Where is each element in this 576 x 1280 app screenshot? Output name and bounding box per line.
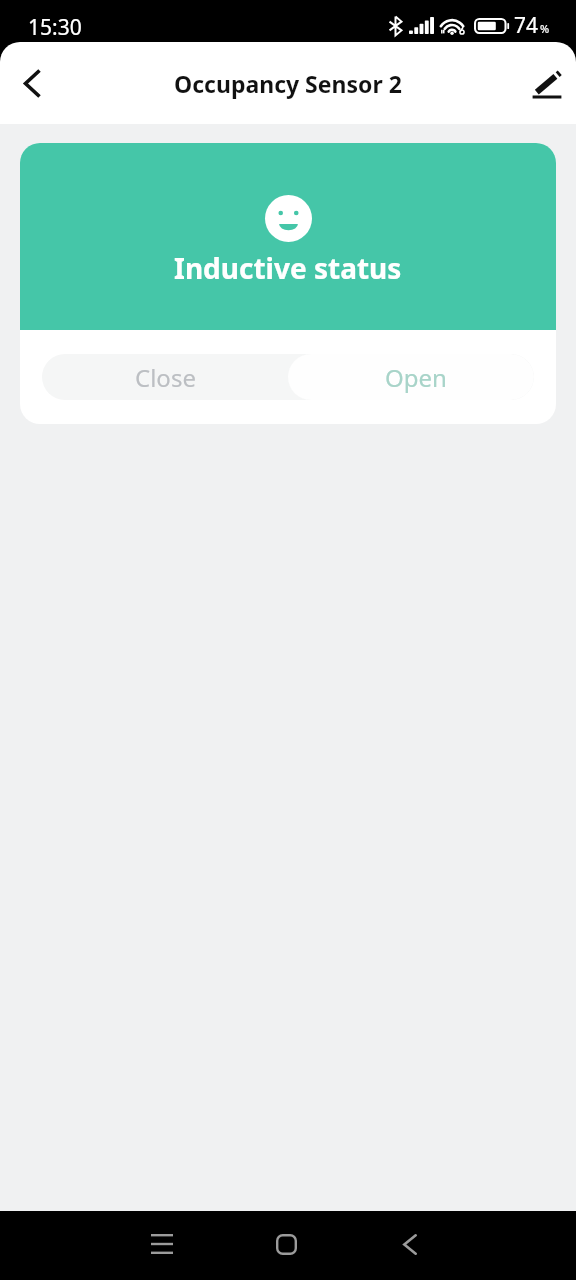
button[interactable]: Open [288,354,534,400]
staticText: Open [385,361,447,394]
button[interactable]: Home [254,1212,318,1276]
staticText: Inductive status [174,249,402,287]
staticText: 74 [514,11,539,40]
staticText: 15:30 [28,13,82,42]
staticText: Occupancy Sensor 2 [174,68,402,99]
button[interactable]: Close [42,354,288,400]
button[interactable]: Back [378,1212,442,1276]
button[interactable]: Recent apps [130,1212,194,1276]
staticText: Close [135,361,196,394]
button[interactable]: Back [6,57,58,109]
button[interactable]: Edit [521,60,573,112]
staticText: % [540,21,550,36]
